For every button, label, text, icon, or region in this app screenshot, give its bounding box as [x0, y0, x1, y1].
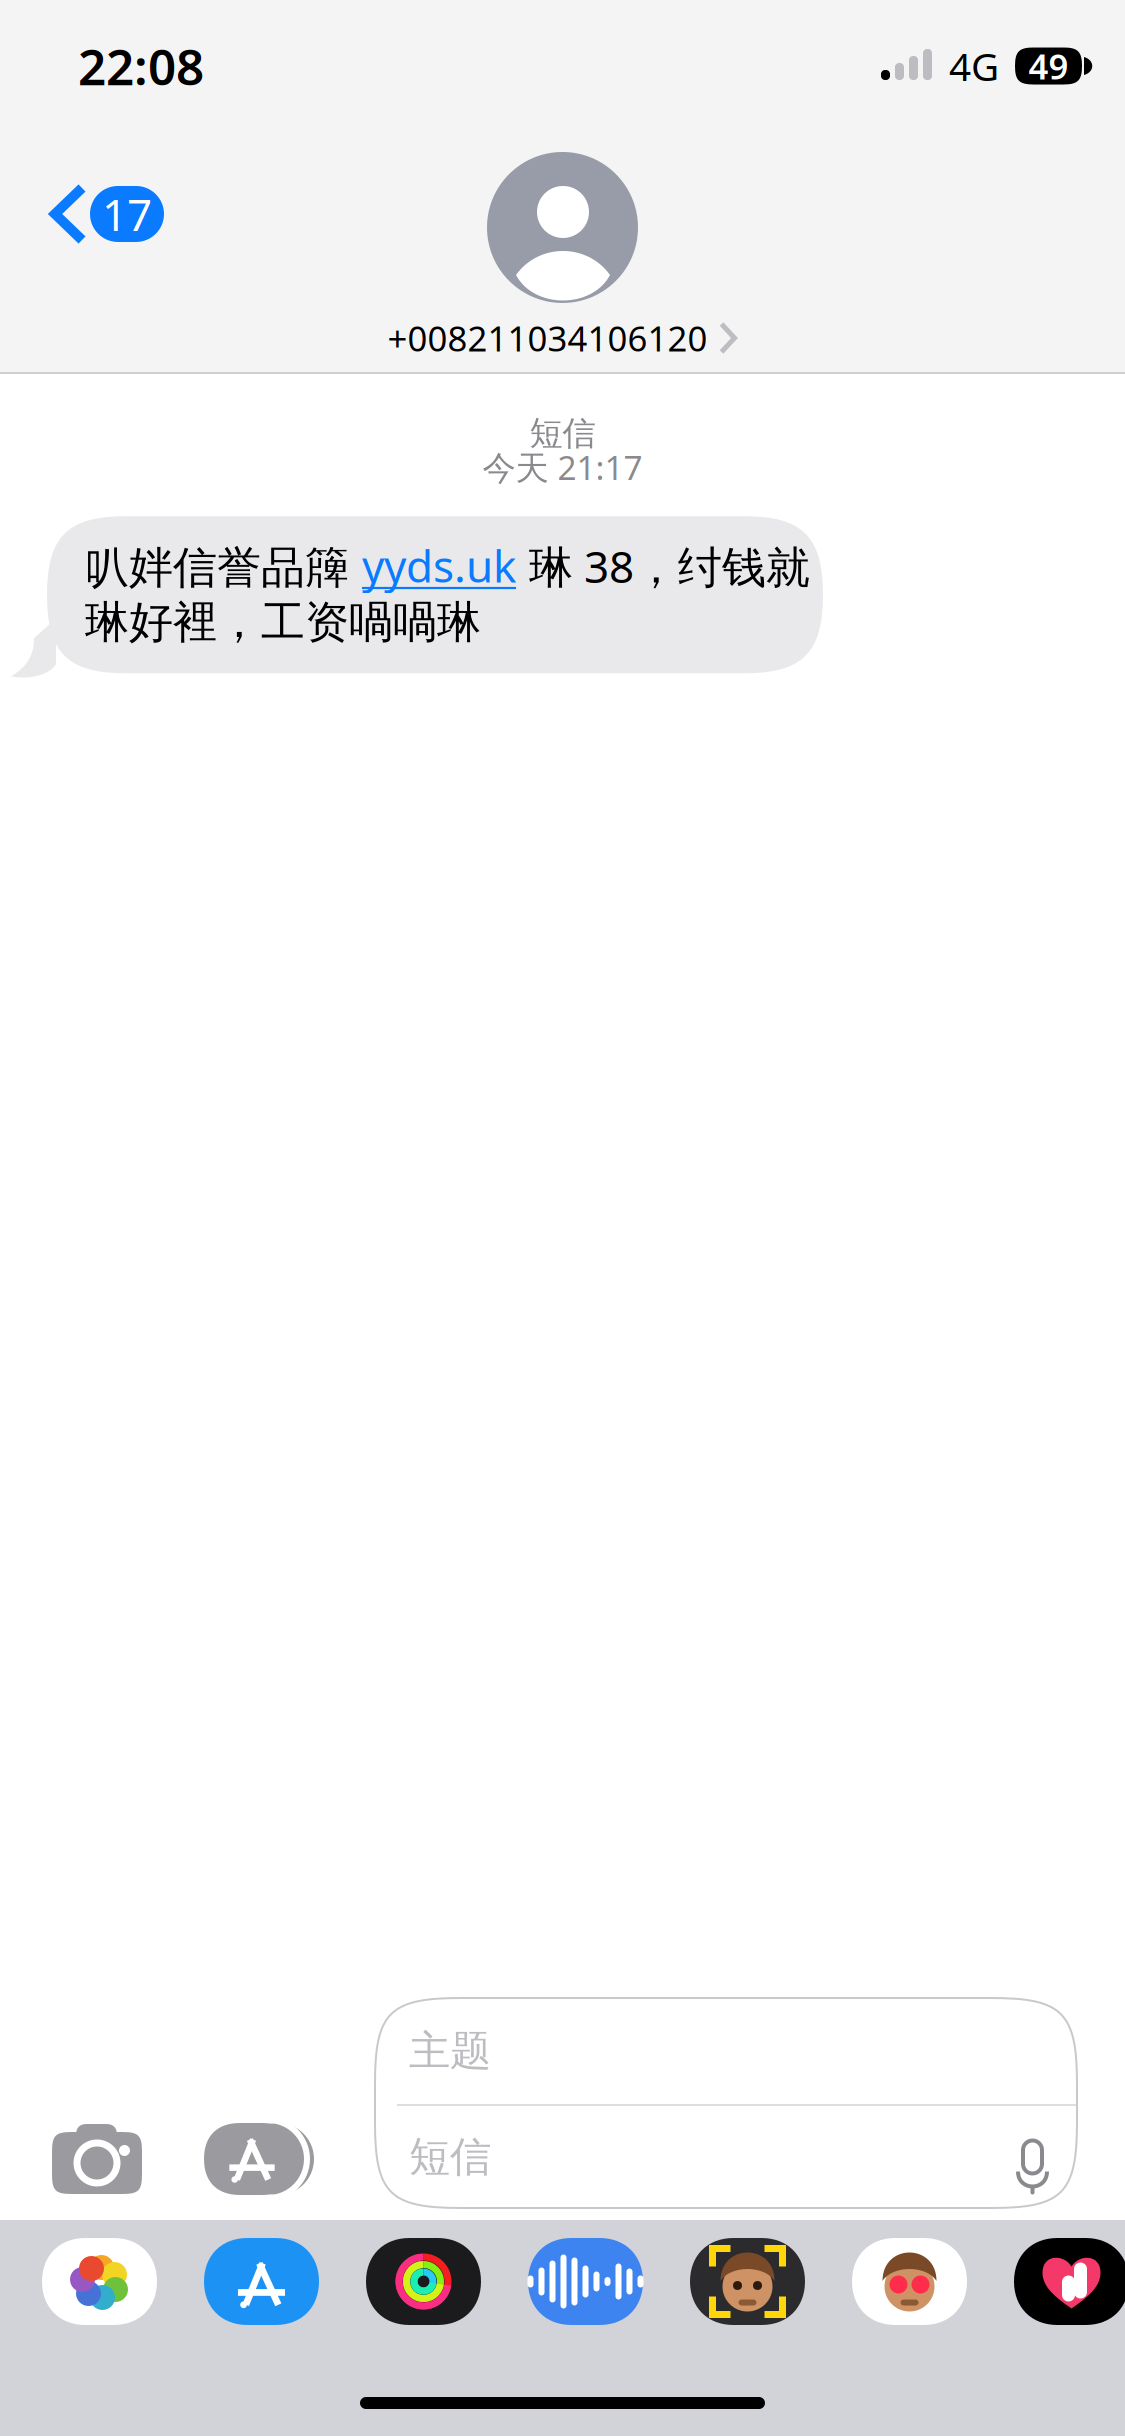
staticText: 17: [102, 185, 152, 243]
button[interactable]: Camera: [0, 1982, 142, 2194]
button[interactable]: Apps: [142, 1982, 316, 2195]
button[interactable]: Memoji: [690, 2238, 805, 2325]
button[interactable]: Health: [1014, 2238, 1125, 2325]
button[interactable]: Activity: [366, 2238, 481, 2325]
staticText: 琳 38，纣钱就: [516, 537, 810, 595]
staticText: 主题: [409, 2026, 491, 2076]
staticText: 琳好裡，工资喎喎琳: [85, 595, 481, 649]
button[interactable]: 17: [0, 143, 194, 275]
staticText: 4G: [949, 40, 999, 92]
staticText: yyds.uk: [362, 536, 516, 595]
button[interactable]: +008211034106120: [387, 152, 737, 361]
button[interactable]: Stickers: [852, 2238, 967, 2325]
button[interactable]: Photos: [42, 2238, 157, 2325]
staticText: 短信: [529, 413, 595, 454]
staticText: 22:08: [78, 33, 204, 99]
button[interactable]: Audio: [528, 2238, 643, 2325]
button[interactable]: App Store: [204, 2238, 319, 2325]
staticText: 短信: [409, 2132, 491, 2182]
staticText: +008211034106120: [387, 315, 707, 361]
staticText: 今天 21:17: [482, 445, 642, 489]
staticText: 叭姅信誉品簰: [85, 541, 362, 595]
staticText: 49: [1028, 43, 1068, 89]
